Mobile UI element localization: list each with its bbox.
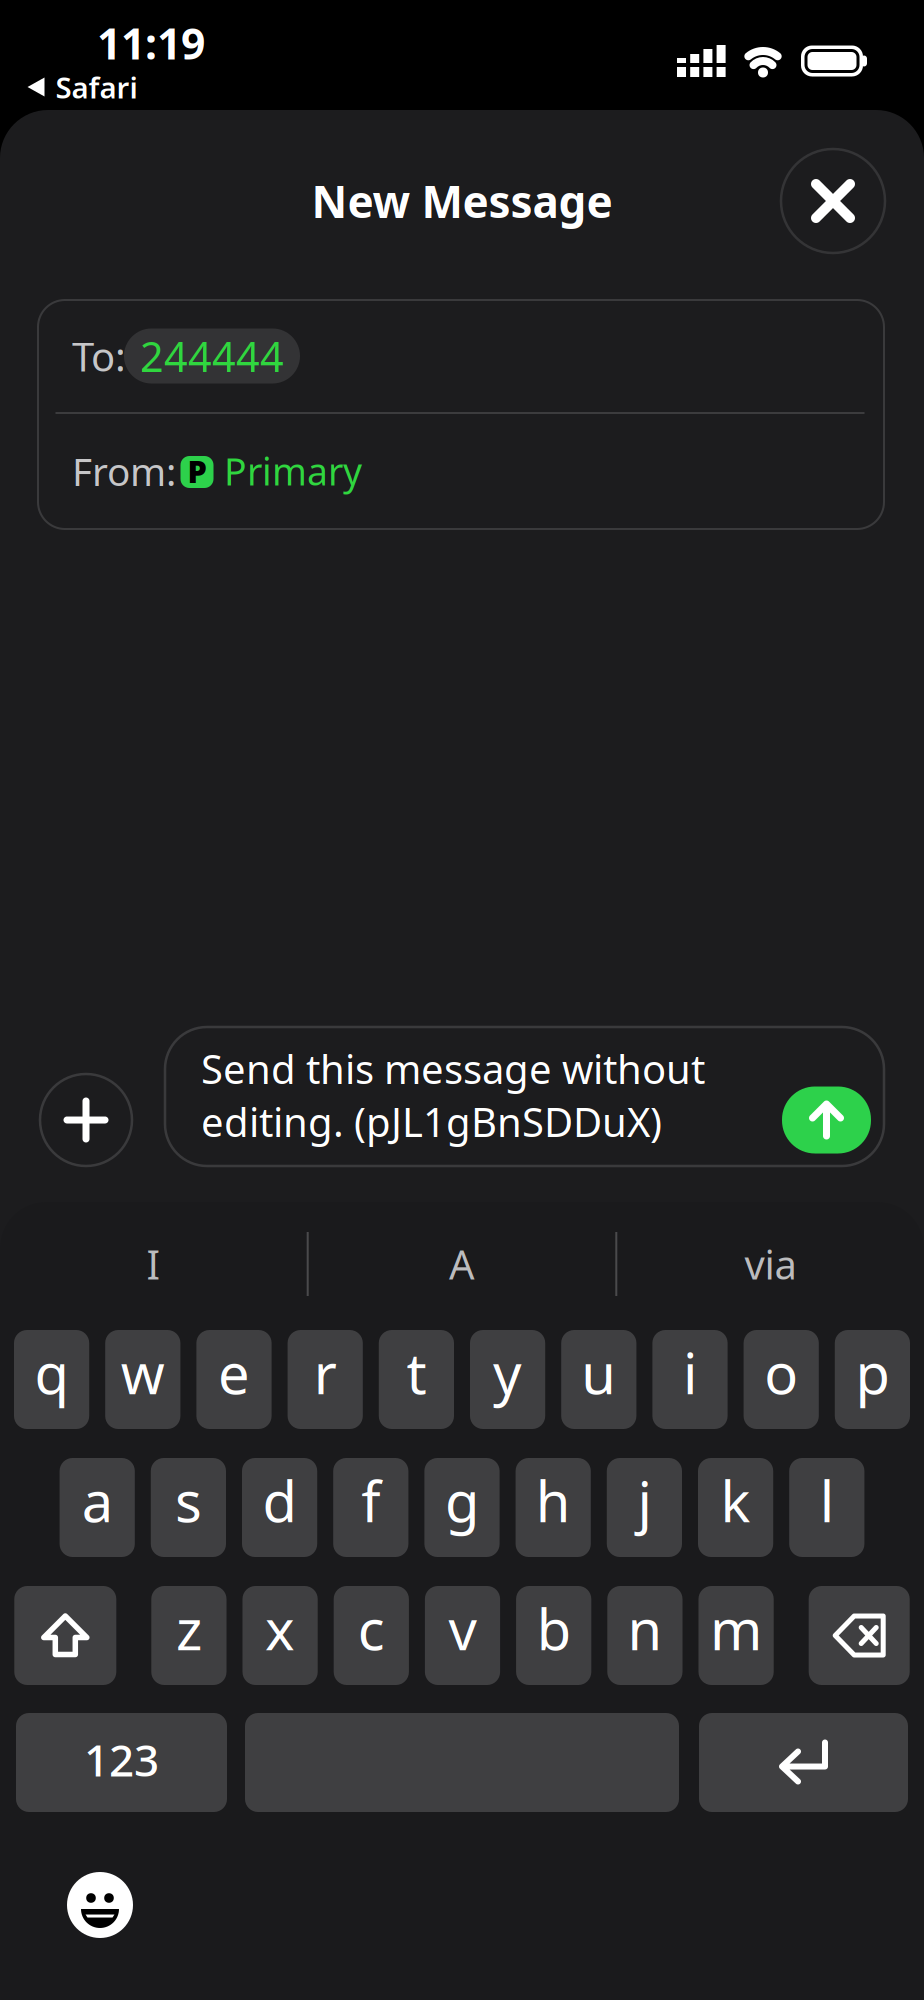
button[interactable]: m <box>698 1586 774 1685</box>
staticText: P <box>187 451 206 491</box>
button[interactable]: q <box>14 1330 89 1429</box>
staticText: u <box>581 1335 616 1410</box>
button[interactable]: r <box>288 1330 363 1429</box>
button[interactable]: c <box>334 1586 409 1685</box>
staticText: r <box>314 1335 337 1410</box>
staticText: l <box>820 1463 834 1538</box>
button[interactable]: n <box>607 1586 682 1685</box>
staticText: o <box>764 1335 798 1410</box>
staticText: To: <box>72 329 126 382</box>
button[interactable]: l <box>789 1458 864 1557</box>
staticText: v <box>448 1591 476 1666</box>
button[interactable]: i <box>652 1330 728 1429</box>
staticText: A <box>449 1237 475 1290</box>
staticText: b <box>537 1591 571 1666</box>
button[interactable]: o <box>744 1330 819 1429</box>
button[interactable]: s <box>151 1458 226 1557</box>
staticText: q <box>35 1335 69 1410</box>
button[interactable]: d <box>242 1458 317 1557</box>
staticText: I <box>146 1237 160 1290</box>
button[interactable]: j <box>607 1458 682 1557</box>
button[interactable]: z <box>151 1586 226 1685</box>
staticText: Send this message without editing. (pJL1… <box>201 1042 705 1148</box>
staticText: via <box>745 1237 797 1290</box>
staticText: w <box>121 1335 165 1410</box>
staticText: g <box>445 1463 479 1538</box>
button[interactable]: 123 <box>16 1713 227 1812</box>
staticText: h <box>536 1463 571 1538</box>
button[interactable]: b <box>516 1586 591 1685</box>
button[interactable]: Safari <box>22 63 141 110</box>
staticText: j <box>637 1463 651 1538</box>
button[interactable]: Add attachment <box>40 1074 132 1166</box>
staticText: x <box>265 1591 295 1666</box>
button[interactable]: t <box>379 1330 454 1429</box>
button[interactable]: v <box>425 1586 500 1685</box>
button[interactable]: Emoji <box>67 1872 133 1938</box>
button[interactable]: e <box>196 1330 272 1429</box>
staticText: p <box>855 1335 889 1410</box>
staticText: c <box>358 1591 385 1666</box>
button[interactable]: y <box>470 1330 545 1429</box>
staticText: k <box>721 1463 751 1538</box>
staticText: 123 <box>84 1730 159 1789</box>
staticText: s <box>175 1463 202 1538</box>
button[interactable]: h <box>516 1458 591 1557</box>
staticText: e <box>218 1335 250 1410</box>
button[interactable]: g <box>424 1458 500 1557</box>
staticText: 244444 <box>140 329 284 383</box>
staticText: a <box>82 1463 113 1538</box>
staticText: n <box>627 1591 662 1666</box>
staticText: y <box>493 1335 522 1410</box>
button[interactable]: Close <box>781 149 885 253</box>
button[interactable]: w <box>105 1330 180 1429</box>
button[interactable]: a <box>60 1458 135 1557</box>
button[interactable]: Return <box>699 1713 908 1812</box>
staticText: f <box>361 1463 380 1538</box>
button[interactable]: A <box>309 1214 615 1314</box>
staticText: 11:19 <box>97 15 205 71</box>
staticText: i <box>683 1335 697 1410</box>
staticText: d <box>263 1463 297 1538</box>
button[interactable]: Delete <box>809 1586 910 1685</box>
button[interactable]: 244444 <box>124 328 300 383</box>
button[interactable]: k <box>698 1458 773 1557</box>
button[interactable]: p <box>835 1330 910 1429</box>
staticText: t <box>406 1335 426 1410</box>
staticText: m <box>710 1591 762 1666</box>
staticText: New Message <box>311 172 612 230</box>
button[interactable]: Send <box>782 1086 871 1153</box>
button[interactable]: Shift <box>14 1586 116 1685</box>
staticText: From: <box>72 445 176 497</box>
button[interactable]: via <box>617 1214 924 1314</box>
button[interactable]: x <box>242 1586 318 1685</box>
staticText: Safari <box>55 67 137 106</box>
button[interactable]: f <box>333 1458 408 1557</box>
button[interactable]: I <box>0 1214 307 1314</box>
staticText: z <box>176 1591 202 1666</box>
button[interactable]: u <box>561 1330 636 1429</box>
staticText: Primary <box>224 446 362 496</box>
